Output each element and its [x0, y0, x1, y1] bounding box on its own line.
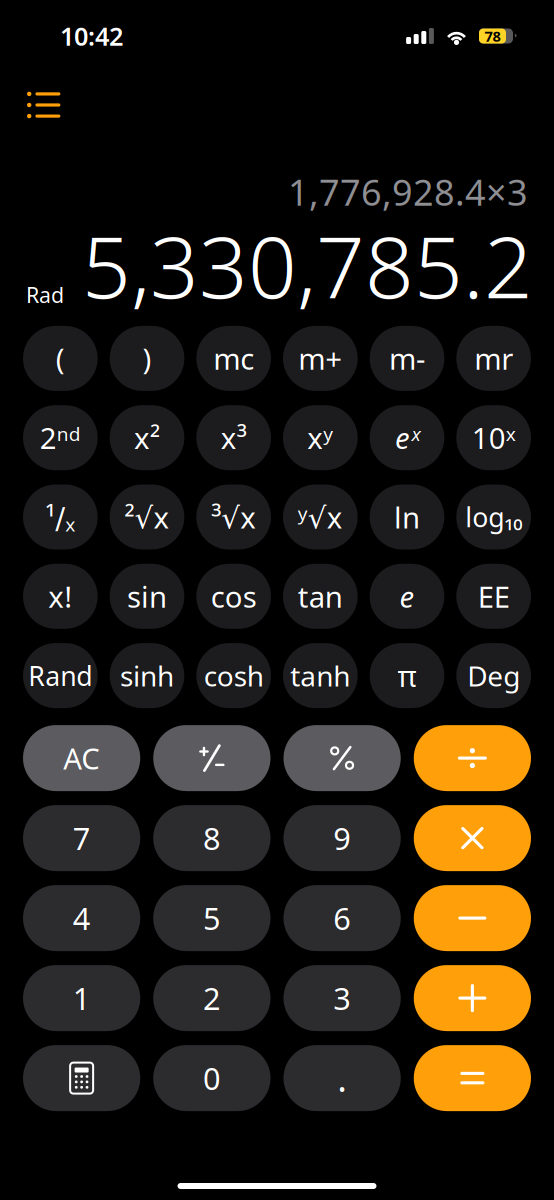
button[interactable]: 10ˣ: [456, 405, 531, 470]
staticText: sin: [127, 577, 167, 616]
button[interactable]: 7: [23, 805, 140, 871]
staticText: 1: [73, 978, 91, 1018]
staticText: 2ⁿᵈ: [40, 418, 81, 457]
staticText: ¹∕ₓ: [45, 497, 75, 536]
button[interactable]: 3: [283, 965, 401, 1031]
button[interactable]: e: [370, 564, 444, 629]
staticText: tan: [298, 577, 343, 616]
button[interactable]: Divide: [414, 725, 531, 791]
button[interactable]: eˣ: [370, 405, 444, 470]
staticText: 6: [333, 898, 351, 938]
button[interactable]: Rand: [23, 643, 98, 708]
staticText: EE: [478, 577, 510, 616]
staticText: 5,330,785.2: [82, 209, 533, 322]
button[interactable]: 4: [23, 885, 140, 951]
button[interactable]: tanh: [283, 643, 358, 708]
staticText: 10ˣ: [472, 418, 516, 457]
button[interactable]: 6: [283, 885, 401, 951]
staticText: ³√x: [211, 497, 256, 536]
button[interactable]: ³√x: [196, 484, 271, 549]
staticText: x²: [134, 418, 160, 457]
button[interactable]: Plus: [414, 965, 531, 1031]
button[interactable]: Minus: [414, 885, 531, 951]
button[interactable]: xʸ: [283, 405, 358, 470]
button[interactable]: sin: [110, 564, 184, 629]
staticText: AC: [63, 739, 100, 778]
staticText: 8: [203, 818, 221, 858]
staticText: 4: [73, 898, 91, 938]
button[interactable]: x!: [23, 564, 98, 629]
staticText: Deg: [467, 657, 520, 694]
button[interactable]: cos: [196, 564, 271, 629]
staticText: e: [399, 577, 414, 616]
button[interactable]: Multiply: [414, 805, 531, 871]
button[interactable]: cosh: [196, 643, 271, 708]
staticText: mr: [474, 339, 513, 378]
button[interactable]: 0: [153, 1045, 270, 1111]
button[interactable]: log₁₀: [456, 484, 531, 549]
staticText: ²√x: [124, 497, 169, 536]
button[interactable]: ʸ√x: [283, 484, 358, 549]
button[interactable]: 5: [153, 885, 270, 951]
button[interactable]: 8: [153, 805, 270, 871]
staticText: x³: [221, 418, 247, 457]
staticText: (: [56, 339, 65, 378]
staticText: 0: [203, 1058, 221, 1098]
staticText: tanh: [290, 657, 350, 694]
button[interactable]: .: [283, 1045, 401, 1111]
button[interactable]: (: [23, 326, 98, 391]
staticText: m+: [298, 339, 342, 378]
staticText: x!: [48, 577, 72, 616]
button[interactable]: History: [0, 54, 83, 127]
button[interactable]: tan: [283, 564, 358, 629]
staticText: 2: [203, 978, 221, 1018]
button[interactable]: 1: [23, 965, 140, 1031]
button[interactable]: AC: [23, 725, 140, 791]
button[interactable]: x²: [110, 405, 184, 470]
staticText: log₁₀: [465, 499, 522, 535]
staticText: ʸ√x: [298, 497, 343, 536]
button[interactable]: ln: [370, 484, 444, 549]
staticText: 5: [203, 898, 221, 938]
button[interactable]: Plus Minus: [153, 725, 270, 791]
button[interactable]: ): [110, 326, 184, 391]
staticText: 3: [333, 978, 351, 1018]
staticText: Rad: [26, 281, 64, 309]
staticText: mc: [213, 339, 254, 378]
button[interactable]: Percent: [283, 725, 401, 791]
button[interactable]: m+: [283, 326, 358, 391]
button[interactable]: mr: [456, 326, 531, 391]
staticText: 9: [333, 818, 351, 858]
button[interactable]: ¹∕ₓ: [23, 484, 98, 549]
staticText: 10:42: [60, 19, 123, 53]
staticText: Rand: [28, 658, 92, 693]
button[interactable]: 9: [283, 805, 401, 871]
staticText: ln: [394, 497, 420, 536]
staticText: 78: [484, 26, 500, 46]
button[interactable]: Calculator: [23, 1045, 140, 1111]
button[interactable]: Equals: [414, 1045, 531, 1111]
button[interactable]: 2: [153, 965, 270, 1031]
button[interactable]: Deg: [456, 643, 531, 708]
staticText: 1,776,928.4×3: [288, 168, 528, 216]
staticText: xʸ: [307, 418, 333, 457]
staticText: cos: [211, 577, 257, 616]
staticText: eˣ: [395, 418, 419, 457]
staticText: cosh: [204, 657, 264, 694]
staticText: ): [142, 339, 151, 378]
button[interactable]: EE: [456, 564, 531, 629]
staticText: 7: [73, 818, 91, 858]
staticText: .: [337, 1054, 347, 1102]
button[interactable]: ²√x: [110, 484, 184, 549]
button[interactable]: mc: [196, 326, 271, 391]
button[interactable]: π: [370, 643, 444, 708]
button[interactable]: x³: [196, 405, 271, 470]
staticText: sinh: [120, 657, 174, 694]
button[interactable]: sinh: [110, 643, 184, 708]
staticText: π: [397, 656, 416, 695]
staticText: m-: [389, 339, 425, 378]
button[interactable]: m-: [370, 326, 444, 391]
button[interactable]: 2ⁿᵈ: [23, 405, 98, 470]
